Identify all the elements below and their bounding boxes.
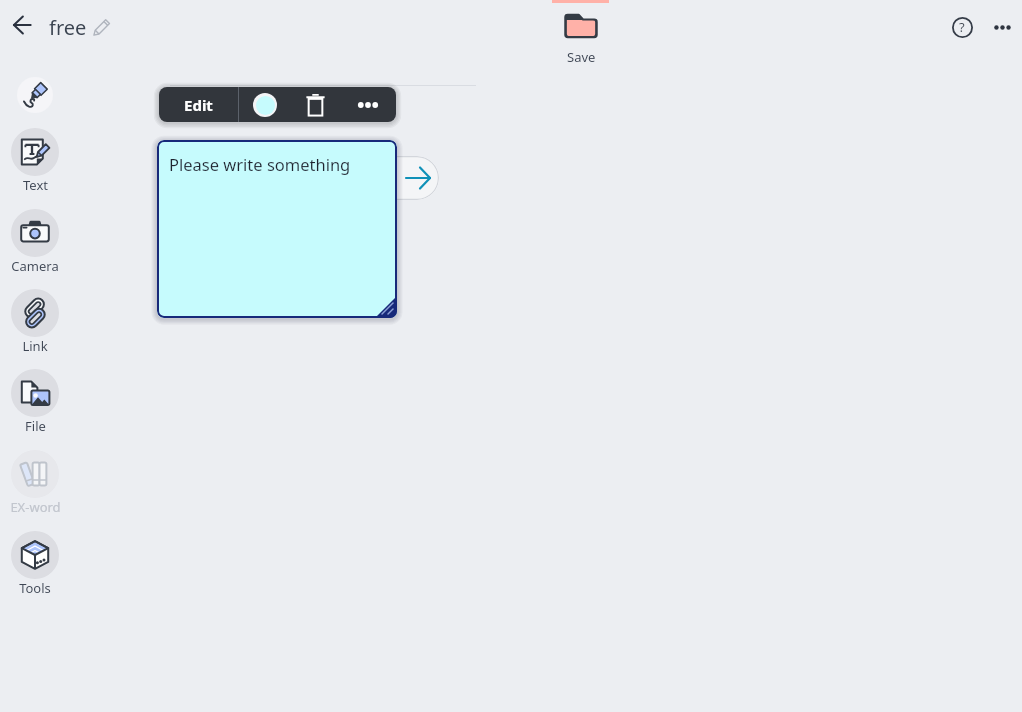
- staticText: Tools: [19, 579, 51, 597]
- button[interactable]: File: [5, 369, 65, 435]
- button[interactable]: Tools: [5, 531, 65, 597]
- staticText: File: [25, 417, 46, 435]
- button[interactable]: Edit: [159, 87, 238, 122]
- staticText: ?: [959, 18, 965, 36]
- button[interactable]: EX-word: [5, 450, 65, 516]
- button[interactable]: [5, 77, 65, 113]
- button[interactable]: free: [49, 12, 111, 42]
- staticText: Camera: [11, 257, 59, 275]
- button[interactable]: Save: [556, 13, 606, 66]
- button[interactable]: Camera: [5, 209, 65, 275]
- staticText: free: [49, 14, 87, 41]
- staticText: Edit: [184, 95, 213, 115]
- staticText: Text: [23, 176, 48, 194]
- button[interactable]: More options: [988, 13, 1016, 41]
- button[interactable]: Link: [5, 289, 65, 355]
- button[interactable]: More: [341, 87, 395, 122]
- button[interactable]: Next: [375, 156, 439, 200]
- button[interactable]: Back: [8, 11, 36, 39]
- button[interactable]: Text: [5, 128, 65, 194]
- staticText: Link: [22, 337, 48, 355]
- button[interactable]: Please write something: [157, 140, 397, 318]
- staticText: Please write something: [169, 153, 351, 175]
- button[interactable]: Colour: [239, 87, 290, 122]
- staticText: Save: [567, 48, 596, 66]
- button[interactable]: Delete: [290, 87, 341, 122]
- staticText: EX-word: [10, 498, 61, 516]
- button[interactable]: Help: [948, 13, 976, 41]
